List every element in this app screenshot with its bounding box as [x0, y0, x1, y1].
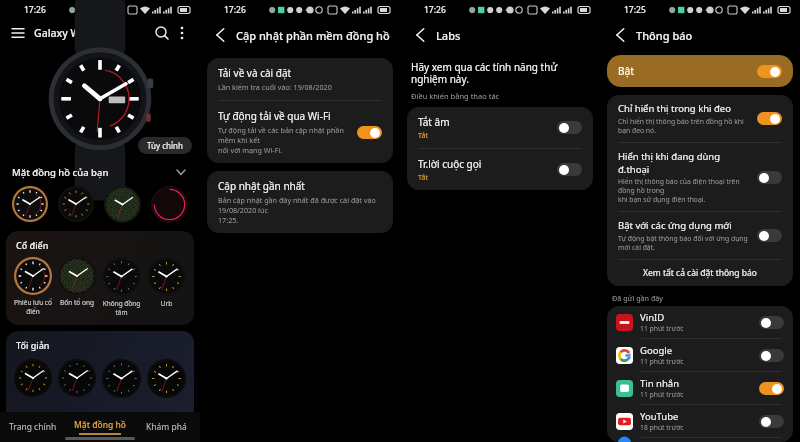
button[interactable]: Back	[608, 23, 632, 47]
staticText: Đã gửi gần đây	[612, 293, 664, 303]
staticText: Hiển thị khi đang dùng đ.thoại	[618, 150, 749, 175]
staticText: Tùy chỉnh	[147, 140, 183, 151]
button[interactable]	[14, 359, 52, 397]
staticText: Thông báo	[636, 28, 693, 43]
staticText: Mặt đồng hồ	[74, 419, 126, 431]
staticText: Phiêu lưu cổ điển	[14, 298, 52, 316]
button[interactable]: Off	[759, 349, 784, 362]
button[interactable]: Off	[759, 415, 784, 428]
staticText: Trang chính	[9, 421, 57, 433]
staticText: Tự động tải về các bản cập nhật phần mềm…	[218, 125, 349, 155]
button[interactable]: Phiêu lưu cổ điển	[14, 257, 52, 316]
button[interactable]: Khám phá	[133, 412, 200, 442]
button[interactable]: Search	[152, 23, 172, 43]
button[interactable]: Mặt đồng hồ	[66, 412, 133, 442]
button[interactable]	[10, 184, 50, 224]
staticText: VinID	[640, 311, 665, 324]
staticText: Bản cập nhật gần đây nhất đã được cài đặ…	[218, 195, 382, 225]
button[interactable]: Cập nhật gần nhất	[207, 171, 393, 233]
button[interactable]: Chỉ hiển thị trong khi đeo	[607, 95, 793, 142]
button[interactable]	[102, 359, 141, 398]
staticText: Chỉ hiển thị thông báo trên đồng hồ khi …	[618, 117, 749, 135]
button[interactable]: Off	[557, 121, 582, 134]
button[interactable]: Off	[557, 163, 582, 176]
staticText: Tự động tải về qua Wi-Fi	[218, 109, 331, 123]
staticText: Tắt	[418, 130, 429, 140]
staticText: Bốn tổ ong	[58, 298, 96, 307]
button[interactable]: Hiển thị khi đang dùng đ.thoại	[607, 143, 793, 211]
staticText: Tải về và cài đặt	[218, 66, 292, 80]
staticText: Cổ điển	[16, 239, 49, 251]
button[interactable]: Menu	[8, 23, 28, 43]
button[interactable]: More options	[172, 23, 192, 43]
staticText: Chỉ hiển thị trong khi đeo	[618, 102, 731, 115]
button[interactable]: Xem tất cả cài đặt thông báo	[607, 260, 793, 286]
button[interactable]	[102, 184, 143, 225]
staticText: 17:26	[24, 4, 46, 16]
staticText: Xem tất cả cài đặt thông báo	[643, 267, 757, 279]
staticText: Cập nhật gần nhất	[218, 179, 305, 193]
staticText: Tr.lời cuộc gọi	[418, 157, 482, 171]
button[interactable]: Không đồng tâm	[102, 257, 141, 317]
button[interactable]: Mặt đồng hồ của bạn	[0, 160, 200, 184]
staticText: Tắt	[418, 172, 429, 182]
button[interactable]: Urb	[147, 257, 186, 308]
staticText: 17:26	[224, 4, 246, 16]
staticText: Không đồng tâm	[102, 299, 141, 317]
staticText: 18 phút trước	[640, 423, 684, 432]
staticText: Bật	[618, 64, 757, 78]
button[interactable]: Off	[757, 171, 782, 184]
staticText: Cập nhật phần mềm đồng hồ	[236, 28, 390, 43]
button[interactable]: Off	[759, 316, 784, 329]
button[interactable]: VinID	[607, 306, 793, 338]
button[interactable]	[58, 359, 96, 397]
staticText: Tin nhắn	[640, 377, 680, 390]
button[interactable]: Back	[208, 23, 232, 47]
staticText: Bật với các ứng dụng mới	[618, 219, 732, 232]
button[interactable]: Tr.lời cuộc gọi	[407, 149, 593, 190]
button[interactable]: On	[757, 112, 782, 125]
staticText: Hãy xem qua các tính năng thử nghiệm này…	[411, 60, 589, 86]
button[interactable]	[56, 184, 96, 224]
staticText: 11 phút trước	[640, 357, 684, 366]
button[interactable]: Off	[757, 229, 782, 242]
staticText: Urb	[147, 299, 186, 308]
button[interactable]: Tự động tải về qua Wi-Fi	[207, 101, 393, 163]
staticText: Galaxy Watch3	[34, 26, 152, 40]
button[interactable]: Back	[408, 23, 432, 47]
button[interactable]: Google	[607, 339, 793, 371]
staticText: 11 phút trước	[640, 324, 684, 333]
staticText: Lần kiểm tra cuối vào: 19/08/2020	[218, 82, 332, 92]
button[interactable]: Tùy chỉnh	[138, 137, 192, 154]
staticText: 11 phút trước	[640, 390, 684, 399]
staticText: Điều khiển bằng thao tác	[411, 91, 500, 101]
button[interactable]: Tắt âm	[407, 107, 593, 148]
button[interactable]: Tin nhắn	[607, 372, 793, 404]
button[interactable]: On	[759, 382, 784, 395]
staticText: YouTube	[640, 410, 679, 423]
button[interactable]	[149, 184, 190, 225]
staticText: Hiển thị thông báo của điện thoại trên đ…	[618, 177, 749, 204]
staticText: 17:26	[424, 4, 446, 16]
button[interactable]: Bật với các ứng dụng mới	[607, 212, 793, 259]
button[interactable]: Messenger	[607, 438, 793, 442]
staticText: Labs	[436, 28, 461, 43]
staticText: Tự động bật thông báo đối với ứng dụng m…	[618, 234, 749, 252]
staticText: 17:25	[624, 4, 646, 16]
staticText: Tối giản	[16, 339, 50, 351]
button[interactable]: Bốn tổ ong	[58, 257, 96, 307]
button[interactable]: On	[357, 126, 382, 139]
staticText: Google	[640, 344, 673, 357]
staticText: Mặt đồng hồ của bạn	[12, 166, 174, 179]
staticText: Tắt âm	[418, 115, 450, 129]
button[interactable]: Trang chính	[0, 412, 66, 442]
button[interactable]: On	[757, 65, 782, 78]
button[interactable]: Tải về và cài đặt	[207, 58, 393, 100]
button[interactable]: YouTube	[607, 405, 793, 437]
staticText: Khám phá	[146, 421, 187, 433]
button[interactable]	[147, 359, 186, 398]
button[interactable]: Bật	[607, 55, 793, 87]
